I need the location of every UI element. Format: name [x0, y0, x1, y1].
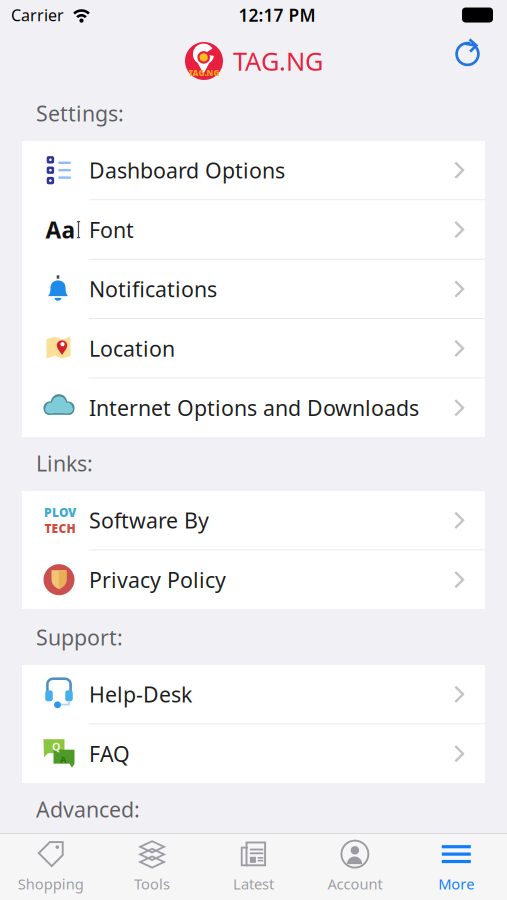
staticText: Software By — [89, 506, 209, 534]
staticText: Privacy Policy — [89, 565, 226, 594]
staticText: More — [438, 874, 474, 894]
button[interactable]: Dashboard Options — [22, 141, 485, 199]
staticText: PLOV — [44, 504, 76, 520]
staticText: Carrier — [11, 4, 64, 26]
staticText: Dashboard Options — [89, 156, 285, 184]
staticText: TAG.NG — [188, 68, 219, 78]
staticText: Latest — [233, 874, 274, 894]
staticText: Q — [52, 740, 60, 754]
button[interactable]: Privacy Policy — [22, 550, 485, 609]
staticText: TECH — [44, 520, 75, 536]
button[interactable]: Refresh — [448, 36, 498, 86]
staticText: Internet Options and Downloads — [89, 394, 419, 422]
staticText: Aa — [45, 214, 75, 245]
button[interactable]: PLOV — [22, 491, 485, 549]
button[interactable]: Tools — [101, 834, 203, 900]
button[interactable]: Location — [22, 319, 485, 378]
staticText: Account — [327, 874, 382, 894]
staticText: A — [60, 753, 66, 765]
button[interactable]: Shopping — [0, 834, 101, 900]
staticText: Advanced: — [36, 795, 140, 823]
button[interactable]: Latest — [203, 834, 304, 900]
staticText: Support: — [36, 623, 123, 651]
button[interactable]: Account — [304, 834, 406, 900]
button[interactable]: Aa — [22, 200, 485, 259]
staticText: Location — [89, 334, 175, 362]
button[interactable]: Q — [22, 724, 485, 783]
staticText: Shopping — [18, 874, 84, 894]
button[interactable]: More — [406, 834, 507, 900]
staticText: FAQ — [89, 739, 130, 768]
staticText: Notifications — [89, 275, 217, 303]
staticText: 12:17 PM — [238, 3, 315, 26]
button[interactable]: Notifications — [22, 260, 485, 318]
staticText: Settings: — [36, 99, 124, 127]
button[interactable]: Help-Desk — [22, 665, 485, 723]
staticText: Help-Desk — [89, 680, 192, 708]
button[interactable]: Internet Options and Downloads — [22, 379, 485, 437]
staticText: Links: — [36, 449, 93, 477]
staticText: Tools — [134, 874, 170, 894]
staticText: Font — [89, 215, 134, 244]
staticText: TAG.NG — [233, 44, 323, 78]
